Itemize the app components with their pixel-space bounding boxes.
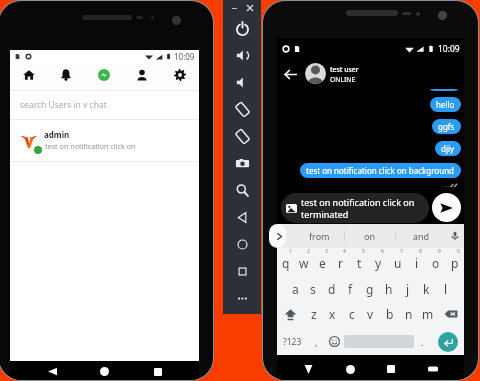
button[interactable]: j xyxy=(398,274,417,300)
button[interactable]: More xyxy=(223,285,261,312)
button[interactable]: ?123 xyxy=(277,328,308,355)
staticText: o xyxy=(432,255,440,271)
button[interactable]: g xyxy=(360,274,379,300)
staticText: . xyxy=(421,336,424,348)
button[interactable]: a xyxy=(286,274,304,300)
staticText: ONLINE xyxy=(330,75,356,84)
staticText: u xyxy=(394,255,402,271)
button[interactable]: Back xyxy=(281,65,299,83)
button[interactable]: Home xyxy=(94,361,115,380)
staticText: e xyxy=(319,255,326,271)
staticText: 1 xyxy=(289,248,292,255)
button[interactable]: m xyxy=(418,300,437,328)
staticText: b xyxy=(386,306,394,322)
button[interactable]: Rotate left xyxy=(223,96,261,123)
staticText: djiy xyxy=(441,143,455,154)
button[interactable]: Volume down xyxy=(223,69,261,96)
staticText: test user xyxy=(330,65,359,74)
button[interactable]: Volume up xyxy=(223,42,261,69)
staticText: r xyxy=(338,255,343,271)
button[interactable]: Close xyxy=(245,3,255,13)
staticText: 4 xyxy=(343,248,346,255)
button[interactable]: , xyxy=(308,328,325,355)
button[interactable]: Backspace xyxy=(437,300,464,328)
button[interactable]: Back xyxy=(223,204,261,231)
staticText: x xyxy=(329,306,336,322)
button[interactable]: h xyxy=(379,274,398,300)
button[interactable]: Zoom xyxy=(223,177,261,204)
button[interactable]: 0 xyxy=(445,248,464,274)
button[interactable]: 1 xyxy=(277,248,295,274)
button[interactable]: Expand suggestions xyxy=(277,224,294,248)
button[interactable]: 2 xyxy=(295,248,313,274)
button[interactable]: Recents xyxy=(381,359,401,379)
button[interactable]: Profile xyxy=(123,63,161,90)
button[interactable]: hello xyxy=(430,97,461,112)
button[interactable]: djiy xyxy=(435,141,461,156)
button[interactable]: admin xyxy=(10,120,199,162)
button[interactable]: v xyxy=(361,300,380,328)
button[interactable]: Overview xyxy=(223,258,261,285)
button[interactable]: Chats xyxy=(85,63,123,90)
staticText: l xyxy=(444,281,448,297)
staticText: 6 xyxy=(381,248,384,255)
button[interactable]: Screenshot xyxy=(223,150,261,177)
button[interactable]: Home xyxy=(223,231,261,258)
button[interactable]: Minimize xyxy=(229,3,239,13)
button[interactable]: Voice input xyxy=(446,224,464,248)
button[interactable]: Enter xyxy=(431,328,464,355)
staticText: terminated xyxy=(301,208,349,220)
button[interactable]: 5 xyxy=(350,248,369,274)
button[interactable]: ggfs xyxy=(432,119,461,134)
staticText: m xyxy=(422,306,434,322)
button[interactable]: Home xyxy=(340,359,360,379)
staticText: a xyxy=(292,281,299,297)
button[interactable]: Home xyxy=(10,63,47,90)
button[interactable]: f xyxy=(341,274,360,300)
button[interactable]: 9 xyxy=(426,248,445,274)
button[interactable]: 7 xyxy=(388,248,407,274)
button[interactable]: Shift xyxy=(277,300,304,328)
staticText: search Users in v chat xyxy=(20,99,107,111)
staticText: ggfs xyxy=(438,121,455,132)
staticText: p xyxy=(451,255,459,271)
staticText: test on notification click on app xyxy=(301,196,424,208)
button[interactable]: test on notification click on app xyxy=(281,193,429,223)
staticText: 10:09 xyxy=(174,51,195,62)
button[interactable]: 8 xyxy=(407,248,426,274)
button[interactable]: on xyxy=(345,224,395,248)
button[interactable]: Emoji xyxy=(325,328,344,355)
button[interactable]: Settings xyxy=(161,63,199,90)
button[interactable]: d xyxy=(322,274,341,300)
button[interactable]: b xyxy=(380,300,399,328)
staticText: f xyxy=(348,281,353,297)
button[interactable]: Power xyxy=(223,15,261,42)
button[interactable]: 6 xyxy=(369,248,388,274)
staticText: 7 xyxy=(400,248,403,255)
button[interactable]: Hide keyboard xyxy=(298,359,318,379)
button[interactable]: z xyxy=(304,300,323,328)
button[interactable]: s xyxy=(304,274,322,300)
staticText: ?123 xyxy=(283,336,302,348)
button[interactable]: 3 xyxy=(313,248,331,274)
button[interactable]: Switch keyboard xyxy=(423,359,443,379)
staticText: z xyxy=(311,306,317,322)
button[interactable]: and xyxy=(396,224,446,248)
button[interactable]: 4 xyxy=(331,248,350,274)
button[interactable]: Rotate right xyxy=(223,123,261,150)
button[interactable]: . xyxy=(414,328,431,355)
button[interactable]: n xyxy=(399,300,418,328)
button[interactable]: l xyxy=(436,274,455,300)
button[interactable]: test on notification click on background xyxy=(300,163,461,178)
button[interactable]: Send xyxy=(432,193,461,222)
button[interactable]: Notifications xyxy=(47,63,85,90)
button[interactable]: x xyxy=(323,300,342,328)
button[interactable]: c xyxy=(342,300,361,328)
staticText: t xyxy=(357,255,362,271)
button[interactable]: Back xyxy=(42,361,63,380)
button[interactable]: djfhjk xyxy=(427,89,461,91)
button[interactable]: k xyxy=(417,274,436,300)
button[interactable]: Recents xyxy=(147,361,168,380)
button[interactable]: from xyxy=(294,224,344,248)
